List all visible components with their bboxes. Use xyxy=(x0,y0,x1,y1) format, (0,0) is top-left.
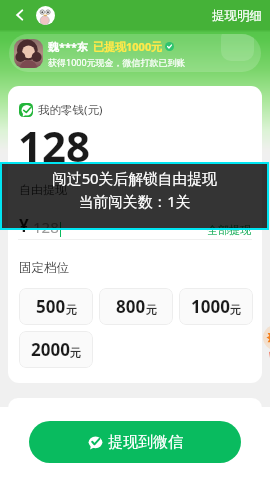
staticText: 128 xyxy=(33,217,59,237)
staticText: 800 xyxy=(116,295,146,318)
button[interactable]: Back xyxy=(9,4,31,26)
staticText: 自由提现 xyxy=(19,182,67,197)
staticText: 提现明细 xyxy=(212,8,262,24)
staticText: 1000 xyxy=(191,295,230,318)
staticText: 元 xyxy=(66,303,77,317)
staticText: 获得1000元现金，微信打款已到账 xyxy=(48,56,186,68)
staticText: 128 xyxy=(18,117,91,174)
staticText: 500 xyxy=(36,295,66,318)
button[interactable]: Profile xyxy=(36,6,55,25)
button[interactable]: 2000 xyxy=(19,331,93,368)
button[interactable]: 提现明细 xyxy=(208,7,266,25)
staticText: 魏***东 xyxy=(48,39,88,54)
staticText: ¥ xyxy=(19,214,29,237)
staticText: 我的零钱(元) xyxy=(38,102,103,118)
button[interactable]: 1000 xyxy=(179,288,253,325)
staticText: 元 xyxy=(230,303,241,317)
staticText: 当前闯关数：1关 xyxy=(0,191,269,211)
staticText: 2000 xyxy=(31,338,70,361)
staticText: 提现到微信 xyxy=(108,433,183,452)
staticText: 元 xyxy=(146,303,157,317)
staticText: 固定档位 xyxy=(19,260,69,276)
button[interactable]: 魏***东 xyxy=(9,34,261,72)
staticText: 已提现1000元 xyxy=(93,39,163,54)
button[interactable]: Rewards xyxy=(258,325,270,367)
staticText: 全部提现 xyxy=(207,223,251,237)
staticText: 元 xyxy=(70,346,81,360)
button[interactable]: 500 xyxy=(19,288,93,325)
button[interactable]: 800 xyxy=(99,288,173,325)
button[interactable]: 提现到微信 xyxy=(29,421,241,463)
staticText: 闯过50关后解锁自由提现 xyxy=(0,168,269,188)
